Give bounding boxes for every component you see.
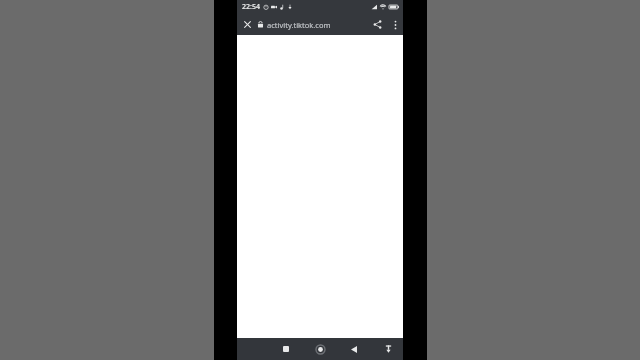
button[interactable]: More options bbox=[387, 14, 403, 35]
staticText: activity.tiktok.com bbox=[267, 20, 331, 30]
button[interactable]: Hide keyboard bbox=[377, 338, 399, 360]
button[interactable]: Home bbox=[309, 338, 331, 360]
button[interactable]: Share bbox=[367, 14, 387, 35]
button[interactable]: Back bbox=[343, 338, 365, 360]
button[interactable]: Close bbox=[237, 14, 257, 35]
staticText: 22:54 bbox=[242, 2, 260, 12]
button[interactable]: Recent apps bbox=[275, 338, 297, 360]
button[interactable]: activity.tiktok.com bbox=[257, 14, 367, 35]
